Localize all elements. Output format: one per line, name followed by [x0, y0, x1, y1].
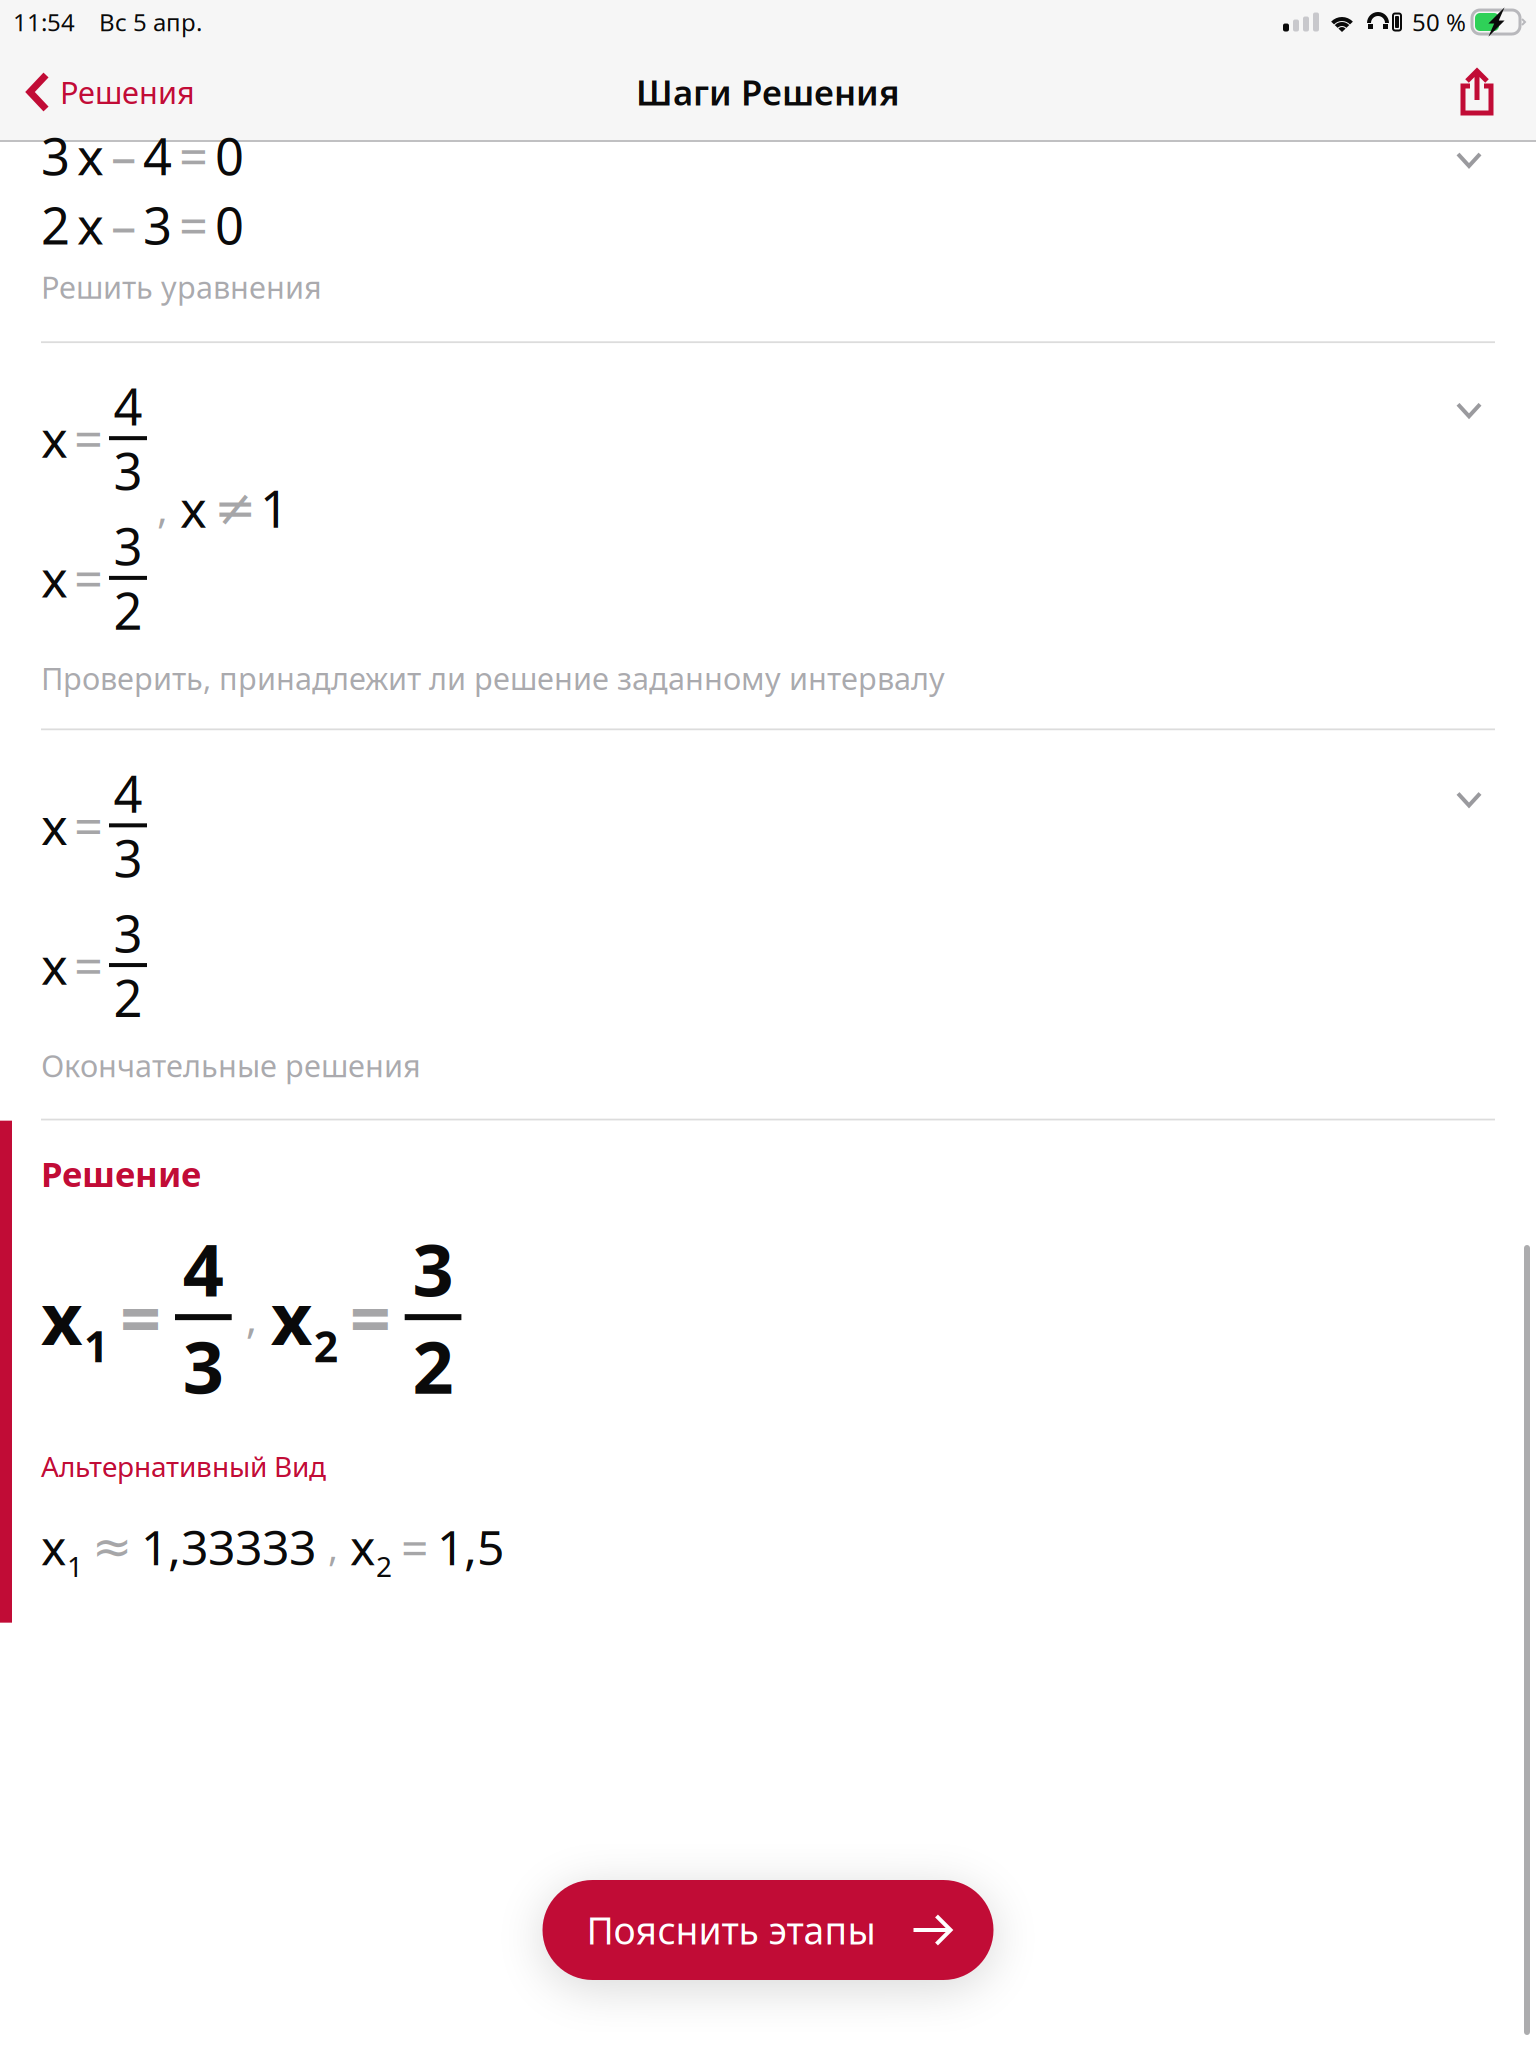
- staticText: x: [41, 792, 68, 859]
- staticText: 4: [183, 1221, 224, 1316]
- staticText: 3: [113, 437, 142, 504]
- staticText: Проверить, принадлежит ли решение заданн…: [41, 658, 945, 698]
- staticText: 3: [413, 1221, 454, 1316]
- staticText: =: [350, 1269, 391, 1365]
- staticText: –: [111, 191, 136, 259]
- staticText: 2: [376, 1547, 392, 1585]
- staticText: 3: [183, 1318, 224, 1414]
- staticText: =: [74, 544, 103, 611]
- staticText: Альтернативный Вид: [41, 1448, 326, 1485]
- staticText: 2: [314, 1317, 338, 1374]
- staticText: x: [41, 931, 68, 999]
- staticText: x: [350, 1515, 375, 1578]
- button[interactable]: x: [0, 730, 1536, 1119]
- staticText: x: [77, 122, 104, 189]
- staticText: 1: [84, 1317, 108, 1374]
- staticText: 0: [215, 122, 244, 189]
- staticText: 4: [113, 372, 142, 440]
- staticText: 11:54: [13, 6, 75, 38]
- button[interactable]: Поделиться: [1420, 44, 1536, 140]
- staticText: 0: [215, 191, 244, 259]
- staticText: 2: [113, 964, 142, 1031]
- staticText: =: [74, 404, 103, 472]
- button[interactable]: x: [0, 343, 1536, 728]
- staticText: ,: [157, 481, 168, 535]
- staticText: ≈: [92, 1519, 132, 1574]
- staticText: Шаги Решения: [636, 69, 900, 115]
- staticText: 3: [113, 512, 142, 579]
- button[interactable]: 3: [0, 142, 1536, 341]
- staticText: ,: [246, 1289, 257, 1345]
- staticText: x: [41, 1269, 83, 1365]
- staticText: Решения: [60, 72, 195, 112]
- staticText: 3: [113, 899, 142, 966]
- button[interactable]: Пояснить этапы: [542, 1880, 993, 1980]
- staticText: Вс 5 апр.: [99, 6, 202, 38]
- staticText: 4: [143, 122, 172, 189]
- staticText: x: [41, 1515, 66, 1578]
- staticText: 3: [143, 191, 172, 259]
- staticText: 50 %: [1412, 6, 1466, 38]
- staticText: x: [180, 474, 207, 542]
- staticText: 1: [260, 474, 289, 542]
- staticText: x: [41, 544, 68, 611]
- staticText: –: [111, 122, 136, 189]
- staticText: =: [401, 1515, 428, 1578]
- staticText: 2: [413, 1318, 454, 1414]
- staticText: =: [179, 191, 208, 259]
- staticText: 3: [41, 122, 70, 189]
- staticText: Решить уравнения: [41, 267, 322, 307]
- staticText: x: [77, 191, 104, 259]
- staticText: 2: [41, 191, 70, 259]
- staticText: ,: [328, 1522, 338, 1571]
- staticText: =: [74, 931, 103, 999]
- staticText: Окончательные решения: [41, 1045, 421, 1086]
- staticText: 3: [113, 824, 142, 891]
- staticText: =: [179, 122, 208, 189]
- staticText: =: [74, 792, 103, 859]
- staticText: 1,33333: [141, 1515, 316, 1578]
- staticText: 4: [113, 759, 142, 827]
- staticText: x: [271, 1269, 313, 1365]
- staticText: Решение: [41, 1151, 201, 1197]
- staticText: 2: [113, 576, 142, 644]
- staticText: x: [41, 404, 68, 472]
- button[interactable]: Решения: [0, 44, 217, 140]
- staticText: =: [120, 1269, 161, 1365]
- staticText: 1,5: [437, 1515, 504, 1578]
- staticText: Пояснить этапы: [586, 1905, 875, 1955]
- staticText: ≠: [214, 479, 256, 537]
- staticText: 1: [67, 1547, 83, 1585]
